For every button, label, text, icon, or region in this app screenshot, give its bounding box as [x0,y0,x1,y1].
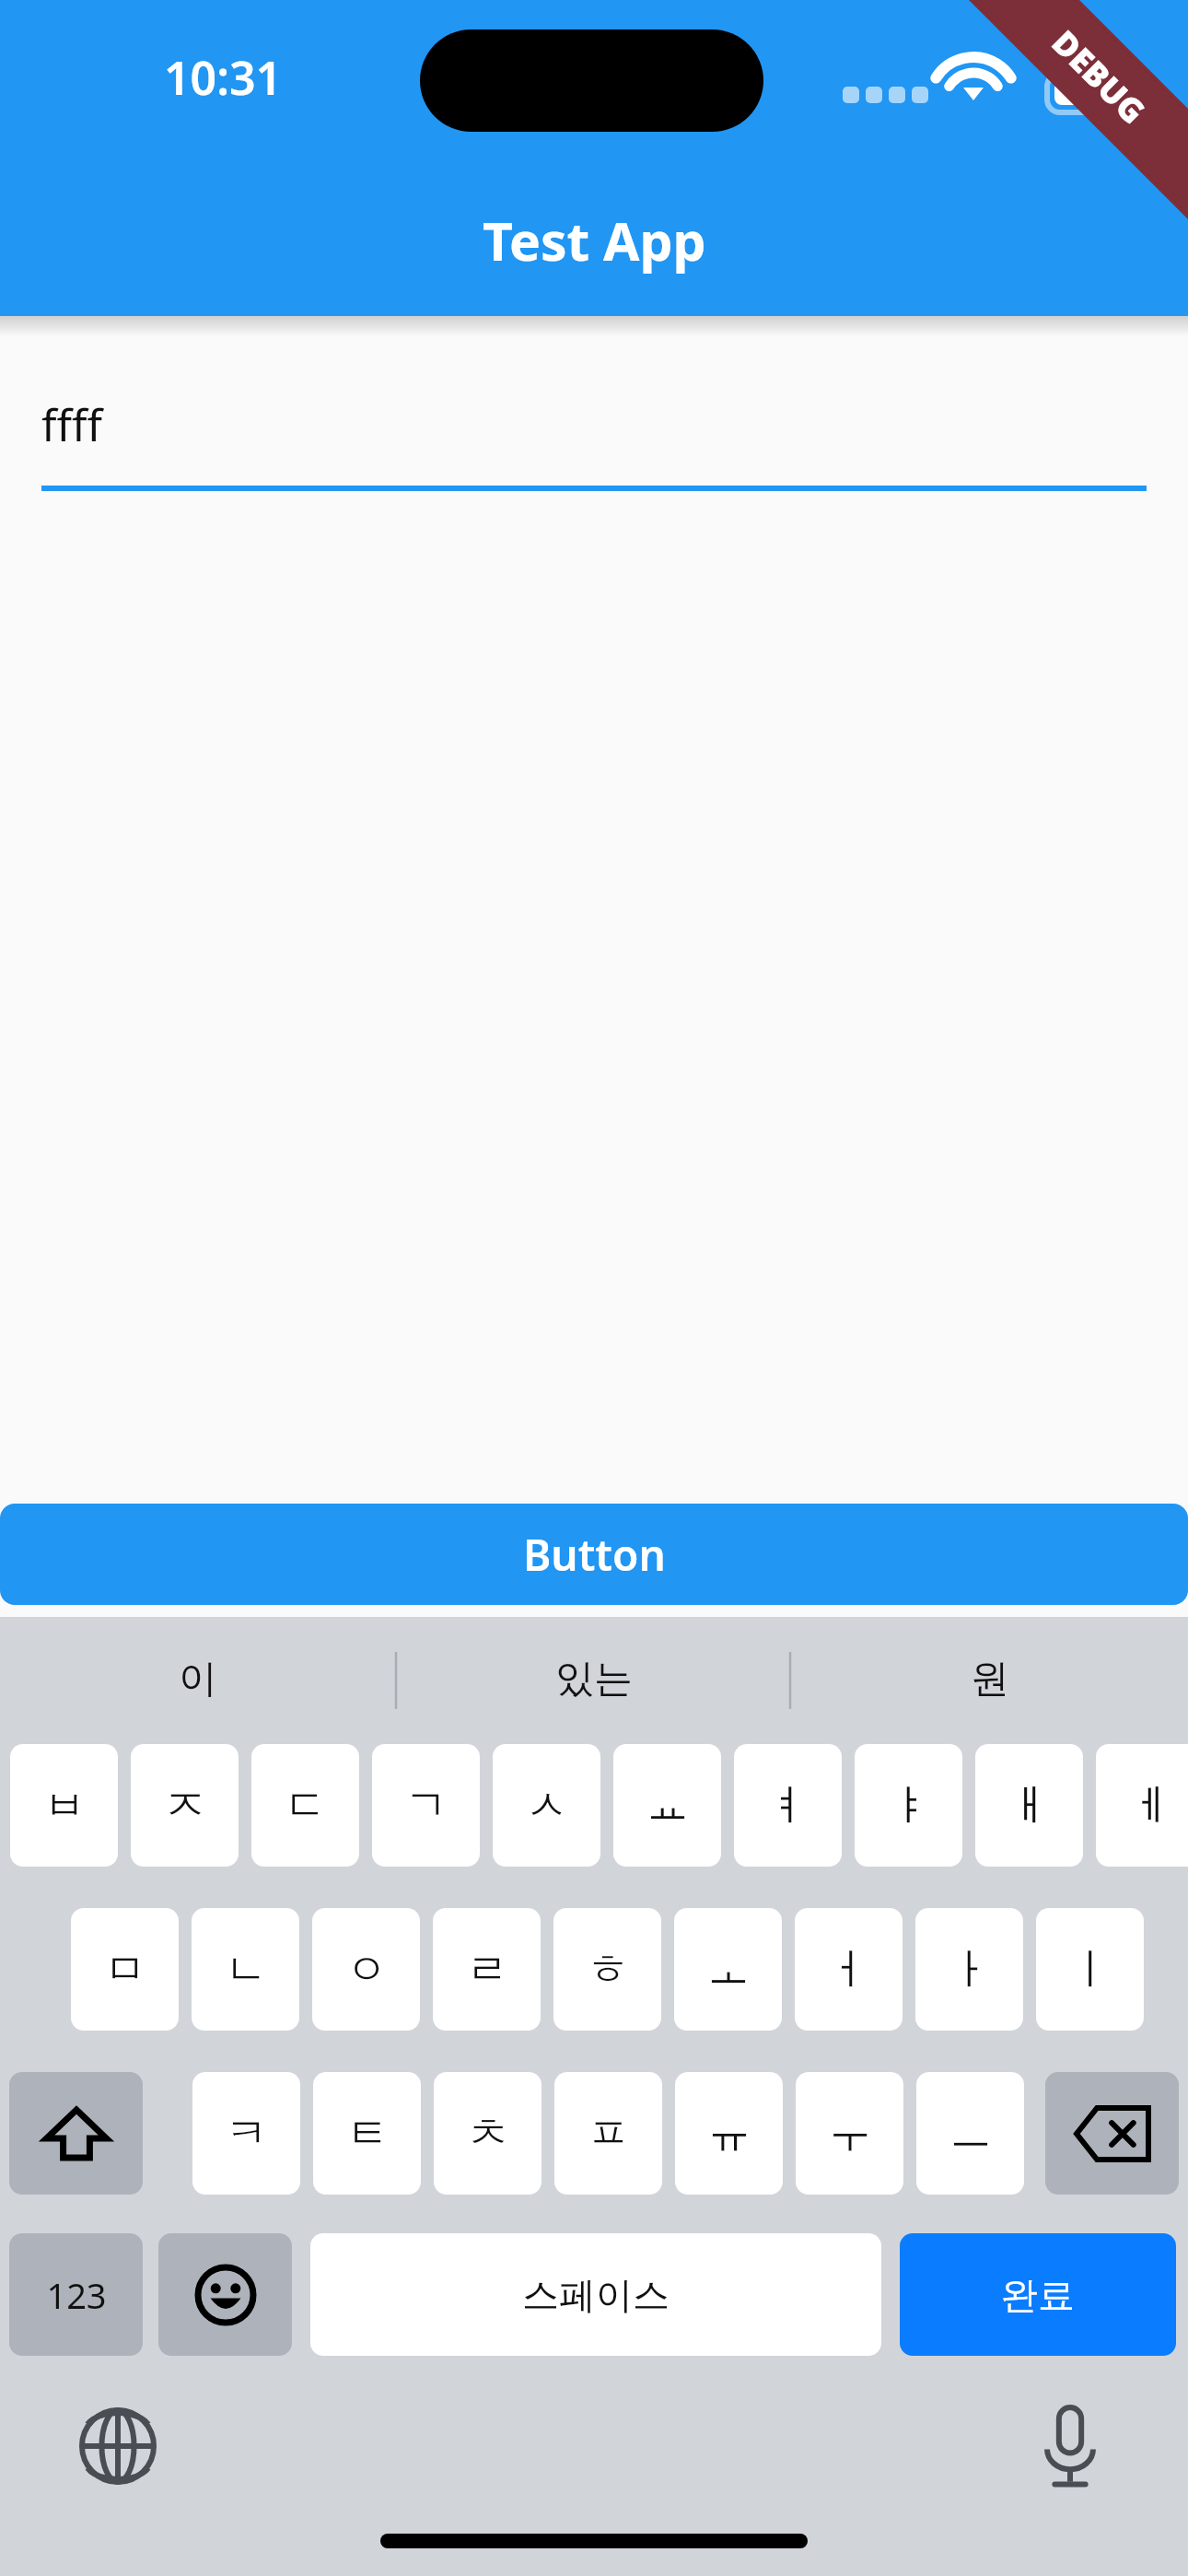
staticText: 123 [46,2271,107,2319]
staticText: ㅍ [588,2107,630,2160]
staticText: DEBUG [1042,20,1156,134]
button[interactable]: ffff [41,394,1147,491]
button[interactable]: Change keyboard [72,2400,164,2492]
staticText: ㅐ [1008,1779,1051,1832]
staticText: ㄹ [466,1943,508,1996]
staticText: ㅣ [1069,1943,1112,1996]
staticText: ㅑ [888,1779,930,1832]
staticText: 원 [971,1655,1009,1704]
button[interactable]: ㅗ [674,1908,782,2031]
button[interactable]: ㅈ [131,1744,239,1867]
staticText: ㅓ [828,1943,870,1996]
button[interactable]: Emoji [158,2233,292,2356]
staticText: ㅜ [829,2107,871,2160]
staticText: ㅋ [226,2107,268,2160]
staticText: ㄴ [225,1943,267,1996]
staticText: ㅠ [708,2107,751,2160]
button[interactable]: ㅡ [916,2072,1024,2195]
staticText: Test App [483,205,706,276]
staticText: 스페이스 [522,2272,670,2318]
button[interactable]: ㅣ [1036,1908,1144,2031]
button[interactable]: ㅎ [553,1908,661,2031]
staticText: 있는 [555,1655,633,1704]
button[interactable]: 이 [0,1617,396,1741]
button[interactable]: ㅛ [613,1744,721,1867]
button[interactable]: ㅓ [795,1908,903,2031]
button[interactable]: ㅏ [915,1908,1023,2031]
button[interactable]: Shift [9,2072,143,2195]
staticText: ffff [41,394,103,454]
staticText: ㅕ [767,1779,809,1832]
staticText: ㅔ [1129,1779,1171,1832]
button[interactable]: ㅍ [554,2072,662,2195]
staticText: ㅊ [467,2107,509,2160]
staticText: Button [523,1526,666,1584]
button[interactable]: ㄴ [192,1908,299,2031]
button[interactable]: Backspace [1045,2072,1179,2195]
button[interactable]: ㅠ [675,2072,783,2195]
staticText: 10:31 [164,46,283,109]
staticText: ㅂ [43,1779,86,1832]
staticText: ㄱ [405,1779,448,1832]
button[interactable]: ㅇ [312,1908,420,2031]
button[interactable]: ㄹ [433,1908,541,2031]
button[interactable]: ㅌ [313,2072,421,2195]
staticText: 완료 [1001,2272,1075,2318]
button[interactable]: 123 [9,2233,143,2356]
button[interactable]: ㅐ [975,1744,1083,1867]
staticText: ㅏ [949,1943,991,1996]
button[interactable]: Button [0,1504,1188,1605]
button[interactable]: ㅁ [71,1908,179,2031]
button[interactable]: ㅅ [493,1744,600,1867]
button[interactable]: ㅑ [855,1744,962,1867]
button[interactable]: ㅔ [1096,1744,1188,1867]
staticText: ㅡ [949,2107,992,2160]
button[interactable]: 스페이스 [310,2233,881,2356]
button[interactable]: 원 [792,1617,1188,1741]
button[interactable]: ㅜ [796,2072,903,2195]
staticText: ㅌ [346,2107,389,2160]
staticText: ㅁ [104,1943,146,1996]
staticText: ㅛ [646,1779,689,1832]
staticText: ㅅ [526,1779,568,1832]
button[interactable]: ㅕ [734,1744,842,1867]
button[interactable]: ㅊ [434,2072,542,2195]
staticText: ㅇ [345,1943,388,1996]
button[interactable]: Voice input [1024,2400,1116,2492]
button[interactable]: 완료 [900,2233,1176,2356]
button[interactable]: 있는 [396,1617,792,1741]
staticText: ㅈ [164,1779,206,1832]
button[interactable]: ㅋ [192,2072,300,2195]
staticText: ㄷ [285,1779,327,1832]
staticText: 이 [179,1655,217,1704]
staticText: ㅎ [587,1943,629,1996]
button[interactable]: ㅂ [10,1744,118,1867]
button[interactable]: ㄷ [251,1744,359,1867]
button[interactable]: ㄱ [372,1744,480,1867]
staticText: ㅗ [707,1943,750,1996]
